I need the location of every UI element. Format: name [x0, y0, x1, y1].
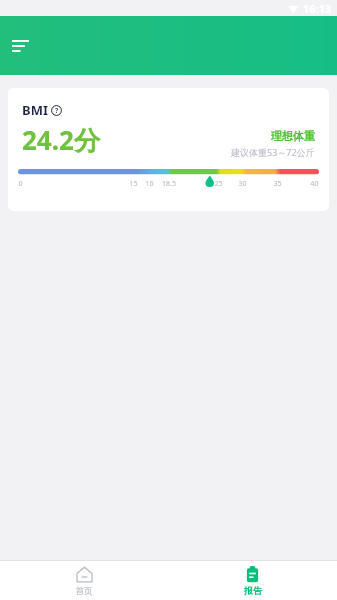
staticText: 35: [273, 179, 282, 189]
staticText: 16: [145, 179, 154, 189]
staticText: 16:13: [303, 1, 332, 16]
button[interactable]: Menu: [3, 29, 37, 63]
staticText: 0: [18, 179, 23, 189]
staticText: 报告: [244, 585, 262, 596]
staticText: ?: [55, 106, 59, 116]
staticText: BMI: [22, 101, 48, 119]
staticText: 40: [310, 179, 319, 189]
staticText: 15: [129, 179, 138, 189]
staticText: 25: [214, 179, 223, 189]
staticText: 30: [238, 179, 247, 189]
staticText: 24.2分: [22, 122, 100, 158]
staticText: 理想体重: [271, 129, 315, 143]
button[interactable]: BMI: [8, 88, 329, 211]
staticText: 建议体重53～72公斤: [231, 146, 315, 158]
button[interactable]: Help: [51, 105, 62, 116]
staticText: 首页: [75, 585, 93, 596]
button[interactable]: 报告: [168, 561, 337, 600]
staticText: 18.5: [162, 179, 176, 189]
button[interactable]: 首页: [0, 561, 168, 600]
